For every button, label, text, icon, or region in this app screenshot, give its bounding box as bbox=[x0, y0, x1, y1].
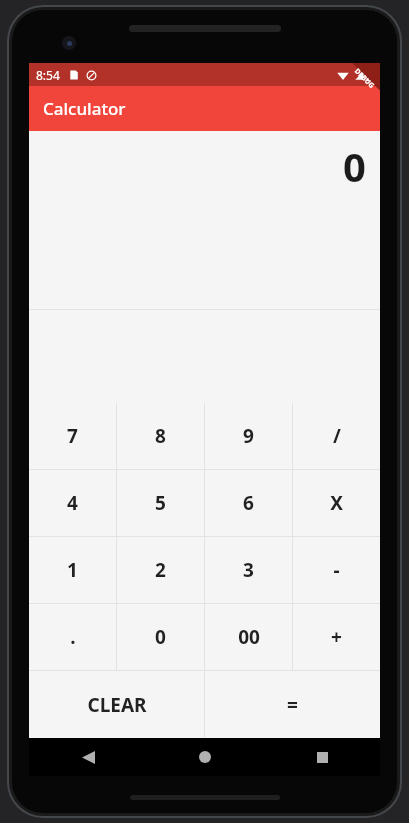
button[interactable]: 0 bbox=[117, 604, 204, 670]
button[interactable]: 00 bbox=[205, 604, 292, 670]
button[interactable]: - bbox=[293, 537, 380, 603]
staticText: / bbox=[333, 423, 341, 449]
staticText: + bbox=[331, 624, 342, 650]
staticText: Calculator bbox=[43, 97, 126, 120]
button[interactable]: = bbox=[205, 671, 380, 738]
staticText: 0 bbox=[155, 624, 166, 650]
staticText: 6 bbox=[243, 490, 254, 516]
staticText: = bbox=[287, 692, 298, 718]
button[interactable]: Back bbox=[67, 738, 109, 776]
button[interactable]: 1 bbox=[29, 537, 116, 603]
button[interactable]: + bbox=[293, 604, 380, 670]
staticText: DEBUG bbox=[352, 67, 377, 91]
button[interactable]: 3 bbox=[205, 537, 292, 603]
button[interactable]: 8 bbox=[117, 403, 204, 469]
staticText: . bbox=[70, 624, 76, 650]
staticText: 3 bbox=[243, 557, 254, 583]
button[interactable]: 4 bbox=[29, 470, 116, 536]
button[interactable]: 6 bbox=[205, 470, 292, 536]
button[interactable]: 7 bbox=[29, 403, 116, 469]
staticText: 4 bbox=[67, 490, 78, 516]
staticText: 9 bbox=[243, 423, 254, 449]
button[interactable]: Recent apps bbox=[301, 738, 343, 776]
staticText: X bbox=[330, 490, 343, 516]
staticText: 8 bbox=[155, 423, 166, 449]
staticText: 0 bbox=[343, 139, 366, 193]
button[interactable]: 2 bbox=[117, 537, 204, 603]
staticText: 2 bbox=[155, 557, 166, 583]
button[interactable]: 5 bbox=[117, 470, 204, 536]
staticText: 00 bbox=[238, 624, 260, 650]
staticText: 1 bbox=[67, 557, 78, 583]
button[interactable]: X bbox=[293, 470, 380, 536]
button[interactable]: Home bbox=[184, 738, 226, 776]
staticText: 7 bbox=[67, 423, 78, 449]
staticText: - bbox=[333, 557, 340, 583]
staticText: 5 bbox=[155, 490, 166, 516]
button[interactable]: 9 bbox=[205, 403, 292, 469]
staticText: CLEAR bbox=[87, 692, 147, 718]
button[interactable]: CLEAR bbox=[29, 671, 204, 738]
button[interactable]: / bbox=[293, 403, 380, 469]
button[interactable]: . bbox=[29, 604, 116, 670]
staticText: 8:54 bbox=[36, 67, 60, 83]
